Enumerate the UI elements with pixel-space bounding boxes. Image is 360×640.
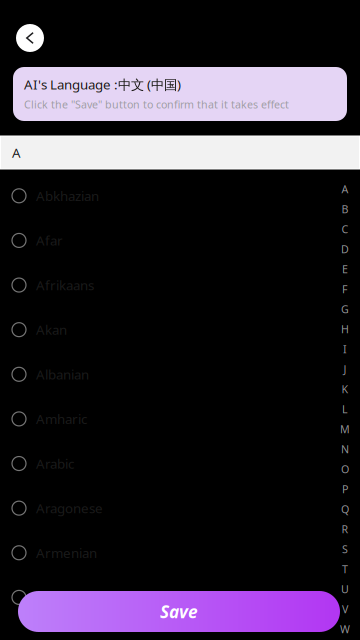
button[interactable]: Aragonese — [0, 486, 360, 530]
staticText: S — [342, 542, 348, 556]
staticText: D — [341, 242, 349, 256]
staticText: Aragonese — [36, 499, 103, 517]
button[interactable]: Abkhazian — [0, 173, 360, 218]
staticText: I — [343, 342, 347, 356]
staticText: M — [340, 422, 350, 436]
staticText: Afar — [36, 232, 63, 249]
staticText: F — [342, 282, 348, 296]
staticText: Albanian — [36, 365, 89, 383]
staticText: B — [341, 202, 348, 216]
staticText: R — [341, 522, 348, 536]
staticText: Akan — [36, 321, 67, 338]
button[interactable]: Armenian — [0, 530, 360, 575]
staticText: A — [12, 144, 21, 161]
staticText: L — [342, 402, 348, 416]
staticText: P — [342, 482, 348, 496]
staticText: Afrikaans — [36, 276, 94, 294]
staticText: O — [341, 462, 349, 476]
staticText: C — [341, 222, 348, 236]
staticText: Q — [341, 502, 349, 516]
staticText: Click the "Save" button to confirm that … — [24, 97, 289, 111]
button[interactable]: Albanian — [0, 352, 360, 397]
staticText: W — [340, 622, 350, 636]
button[interactable]: Assamese — [0, 575, 360, 620]
staticText: Arabic — [36, 455, 74, 472]
staticText: Assamese — [36, 588, 98, 606]
staticText: T — [342, 562, 348, 576]
staticText: U — [341, 582, 349, 596]
button[interactable]: Afar — [0, 218, 360, 263]
staticText: Armenian — [36, 544, 97, 562]
staticText: Abkhazian — [36, 187, 99, 205]
staticText: Amharic — [36, 410, 87, 428]
button[interactable]: Arabic — [0, 441, 360, 486]
button[interactable]: Amharic — [0, 397, 360, 441]
staticText: G — [341, 302, 349, 316]
staticText: Save — [160, 600, 198, 623]
staticText: V — [342, 602, 348, 616]
staticText: J — [343, 362, 346, 376]
button[interactable]: Afrikaans — [0, 263, 360, 307]
button[interactable]: Save — [18, 591, 340, 632]
staticText: N — [341, 442, 349, 456]
staticText: H — [341, 322, 349, 336]
staticText: E — [342, 262, 348, 276]
button[interactable]: Akan — [0, 307, 360, 352]
button[interactable]: Back — [16, 24, 44, 52]
staticText: A — [341, 182, 348, 196]
staticText: K — [341, 382, 348, 396]
staticText: AI's Language :中文 (中国) — [24, 75, 181, 93]
